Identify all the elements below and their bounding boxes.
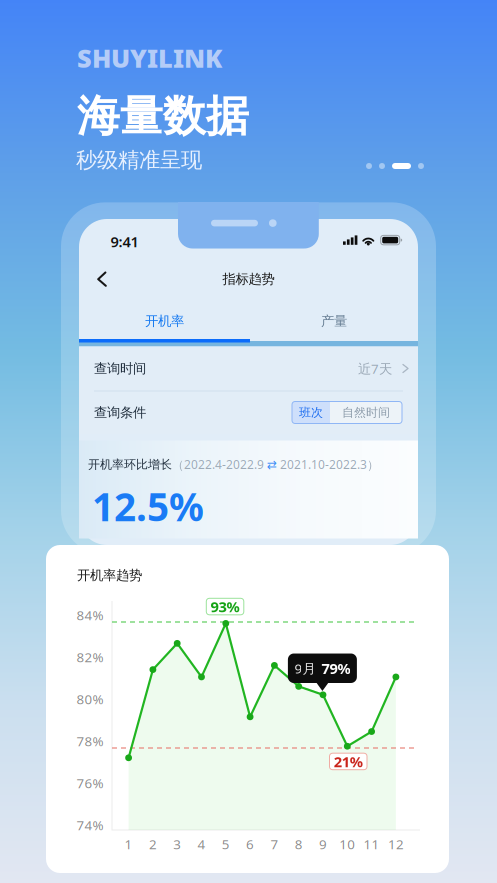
staticText: 9:41	[110, 232, 138, 251]
staticText: 79%	[321, 658, 350, 678]
button[interactable]: 开机率	[79, 306, 250, 336]
staticText: 开机率环比增长	[88, 457, 172, 472]
staticText: （2022.4-2022.9	[172, 456, 267, 472]
staticText: 查询条件	[94, 404, 146, 421]
staticText: ⇄	[267, 458, 277, 471]
staticText: 产量	[321, 313, 347, 329]
staticText: 10	[339, 835, 355, 853]
staticText: 11	[364, 835, 380, 853]
button[interactable]: 自然时间	[330, 401, 402, 423]
staticText: 秒级精准呈现	[76, 147, 202, 173]
staticText: 开机率	[145, 313, 184, 329]
staticText: 4	[197, 835, 205, 853]
staticText: 80%	[76, 690, 103, 708]
staticText: 7	[270, 835, 278, 853]
button[interactable]: 查询时间	[79, 346, 418, 390]
staticText: 6	[246, 835, 254, 853]
staticText: 指标趋势	[222, 271, 274, 287]
staticText: 2	[149, 835, 157, 853]
staticText: SHUYILINK	[77, 41, 222, 75]
staticText: 3	[173, 835, 181, 853]
staticText: 2021.10-2022.3）	[277, 456, 379, 472]
staticText: 21%	[334, 752, 363, 771]
staticText: 查询时间	[94, 360, 146, 377]
staticText: 12.5%	[92, 480, 204, 532]
staticText: 自然时间	[342, 405, 390, 420]
staticText: 8	[295, 835, 303, 853]
button[interactable]: 班次	[292, 401, 330, 423]
staticText: 82%	[76, 648, 103, 666]
staticText: 84%	[76, 606, 103, 624]
staticText: 海量数据	[77, 90, 249, 142]
staticText: 93%	[211, 597, 240, 616]
staticText: 74%	[76, 816, 103, 834]
staticText: 76%	[76, 774, 103, 792]
staticText: 近7天	[358, 360, 392, 377]
staticText: 78%	[76, 732, 103, 750]
staticText: 5	[222, 835, 230, 853]
staticText: 9月	[294, 659, 315, 677]
staticText: 班次	[299, 405, 323, 420]
staticText: 1	[125, 835, 133, 853]
button[interactable]: Back	[87, 265, 117, 293]
staticText: 12	[388, 835, 404, 853]
button[interactable]: 产量	[250, 306, 418, 336]
staticText: 开机率趋势	[77, 567, 142, 583]
staticText: 9	[319, 835, 327, 853]
